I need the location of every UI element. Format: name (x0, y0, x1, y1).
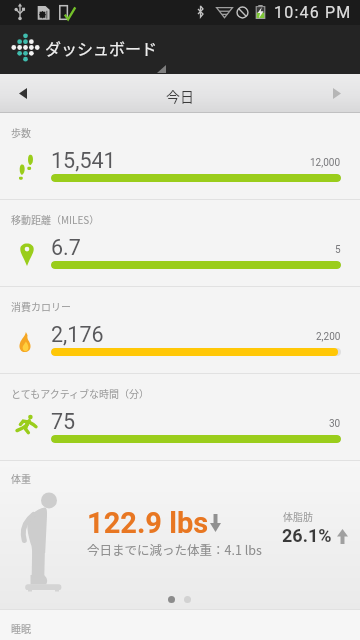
staticText: とてもアクティブな時間（分） (11, 386, 150, 400)
button[interactable]: 消費カロリー (0, 287, 360, 373)
staticText: 10:46 PM (274, 3, 352, 22)
staticText: 今日 (166, 86, 194, 106)
button[interactable]: 睡眠 (0, 610, 360, 640)
staticText: 30 (329, 418, 341, 430)
button[interactable]: 体重 (0, 461, 360, 609)
button[interactable]: 今日 (166, 86, 194, 106)
button[interactable]: 歩数 (0, 113, 360, 199)
button[interactable]: ダッシュボード (0, 25, 360, 74)
staticText: 移動距離（MILES） (11, 212, 100, 226)
button[interactable]: Next day (314, 74, 360, 113)
staticText: 2,176 (51, 322, 104, 347)
button[interactable]: 移動距離（MILES） (0, 200, 360, 286)
staticText: 6.7 (51, 235, 81, 260)
staticText: 睡眠 (11, 621, 31, 635)
staticText: 今日までに減った体重：4.1 lbs (87, 540, 262, 558)
staticText: 75 (51, 409, 76, 434)
staticText: 体重 (11, 471, 31, 485)
staticText: ダッシュボード (45, 36, 158, 59)
staticText: 26.1% (282, 525, 332, 546)
staticText: 2,200 (316, 331, 341, 343)
staticText: 消費カロリー (11, 299, 71, 313)
staticText: 12,000 (310, 157, 341, 169)
staticText: 歩数 (11, 125, 31, 139)
staticText: 5 (335, 244, 341, 256)
button[interactable]: Previous day (0, 74, 46, 113)
staticText: 15,541 (51, 148, 116, 173)
staticText: 体脂肪 (283, 509, 313, 523)
staticText: 122.9 lbs (87, 506, 209, 540)
button[interactable]: とてもアクティブな時間（分） (0, 374, 360, 460)
